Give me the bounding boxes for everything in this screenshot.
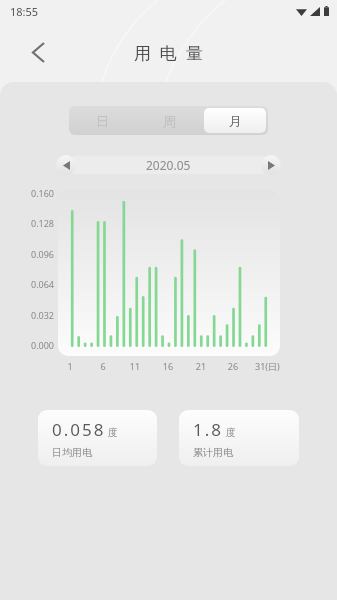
staticText: 21 xyxy=(194,360,208,372)
staticText: 0.032 xyxy=(30,309,54,321)
button[interactable]: 1.8 xyxy=(179,410,299,466)
staticText: 0.064 xyxy=(30,278,54,290)
staticText: 26 xyxy=(226,360,240,372)
staticText: 用 电 量 xyxy=(134,41,203,64)
staticText: 0.160 xyxy=(30,187,54,199)
staticText: 0.096 xyxy=(30,248,54,260)
staticText: 6 xyxy=(96,360,110,372)
staticText: 16 xyxy=(161,360,175,372)
staticText: 11 xyxy=(128,360,142,372)
staticText: 0.000 xyxy=(30,339,54,351)
button[interactable]: 日 xyxy=(71,108,134,133)
staticText: 0.058 xyxy=(52,418,106,441)
button[interactable]: 周 xyxy=(138,108,200,133)
staticText: 度 xyxy=(108,426,118,439)
staticText: 2020.05 xyxy=(146,157,191,173)
button[interactable]: Next month xyxy=(261,155,281,175)
staticText: 31(日) xyxy=(255,360,289,372)
staticText: 0.128 xyxy=(30,217,54,229)
button[interactable]: 0.058 xyxy=(38,410,157,466)
staticText: 累计用电 xyxy=(193,446,233,459)
staticText: 月 xyxy=(229,113,242,129)
staticText: 1 xyxy=(63,360,77,372)
staticText: 周 xyxy=(163,113,176,129)
staticText: 日 xyxy=(96,113,109,129)
button[interactable]: Back xyxy=(20,34,56,70)
staticText: 1.8 xyxy=(193,418,224,441)
staticText: 度 xyxy=(226,426,236,439)
staticText: 日均用电 xyxy=(52,446,92,459)
button[interactable]: 月 xyxy=(204,108,266,133)
button[interactable]: Previous month xyxy=(56,155,76,175)
staticText: 18:55 xyxy=(10,4,39,19)
